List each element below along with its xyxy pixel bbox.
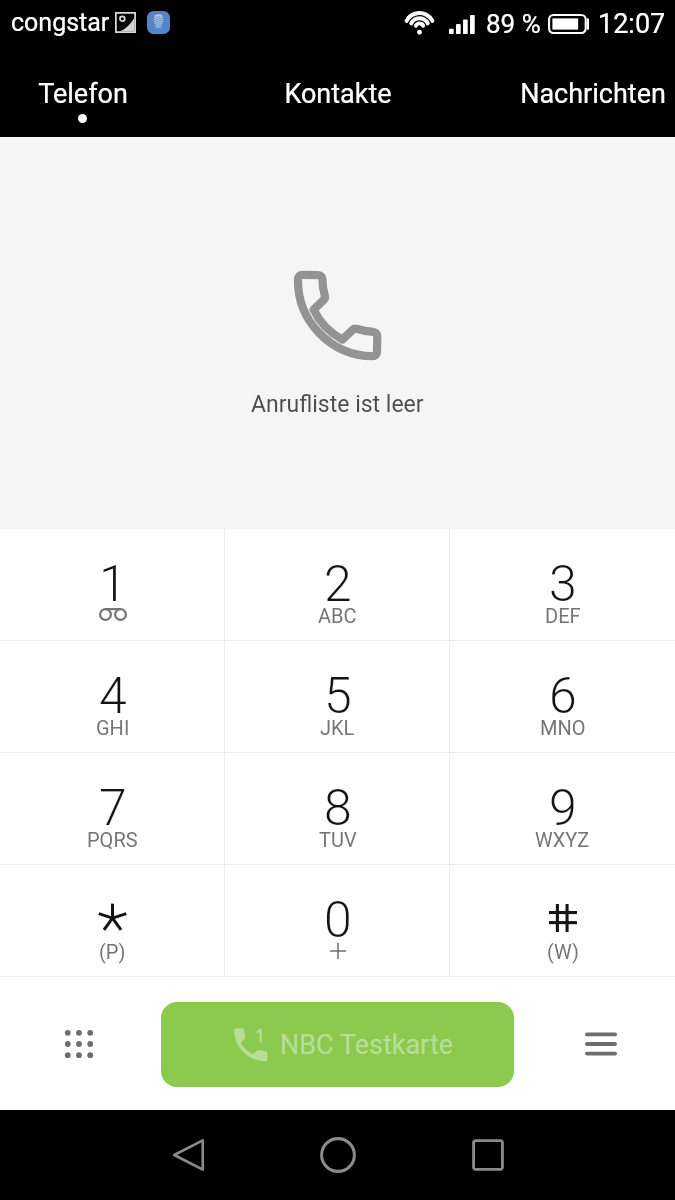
staticText: TUV: [319, 828, 357, 851]
staticText: ABC: [318, 604, 357, 627]
staticText: GHI: [96, 716, 130, 739]
staticText: 5: [324, 667, 352, 726]
button[interactable]: Telefon: [0, 56, 165, 137]
staticText: (W): [547, 940, 579, 963]
button[interactable]: 1: [0, 529, 225, 640]
staticText: 7: [99, 779, 127, 838]
button[interactable]: (P): [0, 865, 225, 976]
staticText: Kontakte: [284, 78, 392, 110]
staticText: Telefon: [38, 78, 128, 110]
button[interactable]: Back: [138, 1110, 238, 1200]
staticText: 8: [324, 779, 352, 838]
button[interactable]: Nachrichten: [510, 56, 675, 137]
staticText: 2: [324, 555, 352, 614]
button[interactable]: 9: [450, 753, 675, 864]
staticText: Anrufliste ist leer: [251, 391, 424, 418]
staticText: 9: [549, 779, 577, 838]
button[interactable]: Show dialpad: [0, 978, 161, 1110]
staticText: (P): [99, 940, 126, 963]
staticText: 12:07: [598, 8, 666, 40]
button[interactable]: More options: [514, 978, 675, 1110]
button[interactable]: 8: [225, 753, 450, 864]
staticText: DEF: [545, 604, 581, 627]
staticText: 6: [549, 667, 577, 726]
staticText: 0: [324, 891, 352, 950]
staticText: 1: [99, 555, 127, 614]
staticText: WXYZ: [535, 828, 590, 851]
staticText: NBC Testkarte: [280, 1029, 454, 1061]
button[interactable]: Kontakte: [255, 56, 420, 137]
staticText: congstar: [11, 8, 110, 37]
button[interactable]: 7: [0, 753, 225, 864]
button[interactable]: 4: [0, 641, 225, 752]
staticText: JKL: [320, 716, 355, 739]
button[interactable]: NBC Testkarte: [161, 1002, 514, 1087]
staticText: 4: [99, 667, 127, 726]
staticText: 3: [549, 555, 577, 614]
button[interactable]: 5: [225, 641, 450, 752]
button[interactable]: 2: [225, 529, 450, 640]
staticText: PQRS: [87, 828, 138, 851]
button[interactable]: Recent apps: [438, 1110, 538, 1200]
button[interactable]: (W): [450, 865, 675, 976]
staticText: Nachrichten: [520, 78, 666, 110]
button[interactable]: 3: [450, 529, 675, 640]
staticText: 89 %: [486, 9, 541, 39]
staticText: MNO: [540, 716, 586, 739]
button[interactable]: 0: [225, 865, 450, 976]
button[interactable]: 6: [450, 641, 675, 752]
button[interactable]: Home: [288, 1110, 388, 1200]
